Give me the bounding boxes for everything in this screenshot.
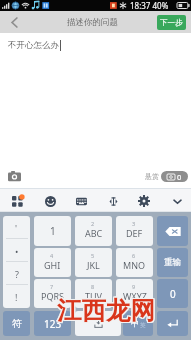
staticText: GHI [44,259,61,271]
button[interactable]: Back [0,11,28,33]
button[interactable]: Space [75,311,121,336]
staticText: 0 [170,287,176,301]
button[interactable]: 3 [116,216,153,246]
staticText: DEF [126,227,143,239]
button[interactable]: ? [3,262,30,285]
staticText: 江西龙网 [57,295,155,326]
button[interactable]: 123 [34,311,71,336]
staticText: 江西龙网 [56,296,154,327]
button[interactable]: 6 [116,248,153,277]
staticText: 0 [177,172,182,182]
staticText: MNO [123,259,146,271]
button[interactable]: Hide keyboard [166,190,188,212]
staticText: 江西龙网 [58,296,156,327]
staticText: 不开心怎么办 [8,40,59,51]
button[interactable]: Settings [133,190,155,212]
button[interactable]: 下一步 [157,15,186,30]
staticText: JKL [87,259,100,271]
button[interactable]: 9 [116,279,153,308]
button[interactable]: 5 [75,248,112,277]
button[interactable]: 4 [34,248,71,277]
staticText: 8 [91,283,95,290]
staticText: 重输 [164,257,181,268]
staticText: 2 [91,220,95,227]
button[interactable]: 0 [161,171,188,182]
button[interactable]: Add photo [4,166,24,186]
staticText: 18:37 40% [130,0,169,11]
staticText: 江西龙网 [57,296,155,327]
staticText: 5 [91,252,95,259]
staticText: 悬赏 [145,172,159,181]
staticText: 江西龙网 [57,294,155,325]
staticText: 6 [132,252,136,259]
staticText: ABC [85,227,103,239]
button[interactable]: ! [3,285,30,308]
button[interactable]: 8 [75,279,112,308]
staticText: 描述你的问题 [67,17,118,28]
staticText: 9 [132,283,136,290]
staticText: 江西龙网 [56,294,154,325]
staticText: PQRS [41,290,65,302]
button[interactable]: 0 [157,279,188,308]
button[interactable]: 符 [3,311,30,336]
staticText: 4 [50,252,54,259]
button[interactable]: Keyboard layout [70,190,92,212]
staticText: ! [15,291,18,303]
staticText: 英 [140,322,146,329]
staticText: 符 [12,317,22,330]
button[interactable]: Backspace [157,216,188,246]
staticText: • [15,245,19,257]
staticText: 3 [132,220,136,227]
staticText: 中 [131,318,140,329]
button[interactable]: • [3,239,30,262]
staticText: 江西龙网 [58,295,156,326]
button[interactable]: Enter [157,311,188,336]
button[interactable]: ' [3,216,30,239]
button[interactable]: 2 [75,216,112,246]
staticText: 123 [44,317,62,331]
button[interactable]: 重输 [157,248,188,277]
staticText: 1 [50,224,56,238]
staticText: 下一步 [160,18,183,27]
staticText: 江西龙网 [56,295,154,326]
button[interactable]: Switch input language [123,311,153,336]
button[interactable]: Apps [6,190,28,212]
staticText: ? [15,268,19,280]
staticText: ' [15,222,18,234]
staticText: 7 [50,283,54,290]
button[interactable]: 1 [34,216,71,246]
staticText: TUV [85,290,102,302]
staticText: WXYZ [123,290,147,302]
button[interactable]: 7 [34,279,71,308]
button[interactable]: Move cursor [102,190,124,212]
button[interactable]: Emoji [39,190,61,212]
staticText: 江西龙网 [58,294,156,325]
